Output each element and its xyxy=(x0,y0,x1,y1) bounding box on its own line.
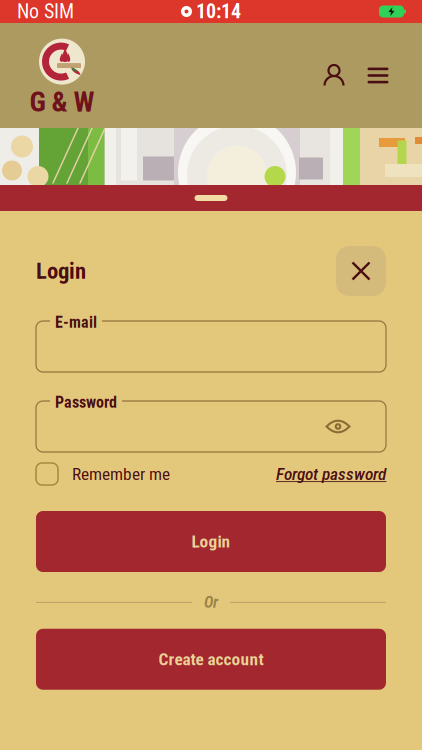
button[interactable]: Create account xyxy=(36,629,386,690)
staticText: 10:14 xyxy=(196,0,241,23)
button[interactable]: Show password xyxy=(318,406,358,446)
staticText: Login xyxy=(36,258,86,284)
staticText: Login xyxy=(191,531,230,552)
staticText: Password xyxy=(55,393,117,412)
button[interactable]: Forgot password xyxy=(276,464,386,484)
staticText: Remember me xyxy=(72,464,170,484)
staticText: E-mail xyxy=(55,313,97,332)
staticText: Or xyxy=(204,593,218,612)
staticText: No SIM xyxy=(17,0,74,23)
button[interactable]: Remember me xyxy=(36,463,170,485)
button[interactable]: Login xyxy=(36,511,386,572)
button[interactable]: Menu xyxy=(356,53,400,97)
staticText: Create account xyxy=(158,649,263,669)
button[interactable]: Close xyxy=(336,246,386,296)
button[interactable]: Account xyxy=(312,53,356,97)
staticText: Forgot password xyxy=(276,464,386,484)
staticText: G & W xyxy=(29,86,94,118)
